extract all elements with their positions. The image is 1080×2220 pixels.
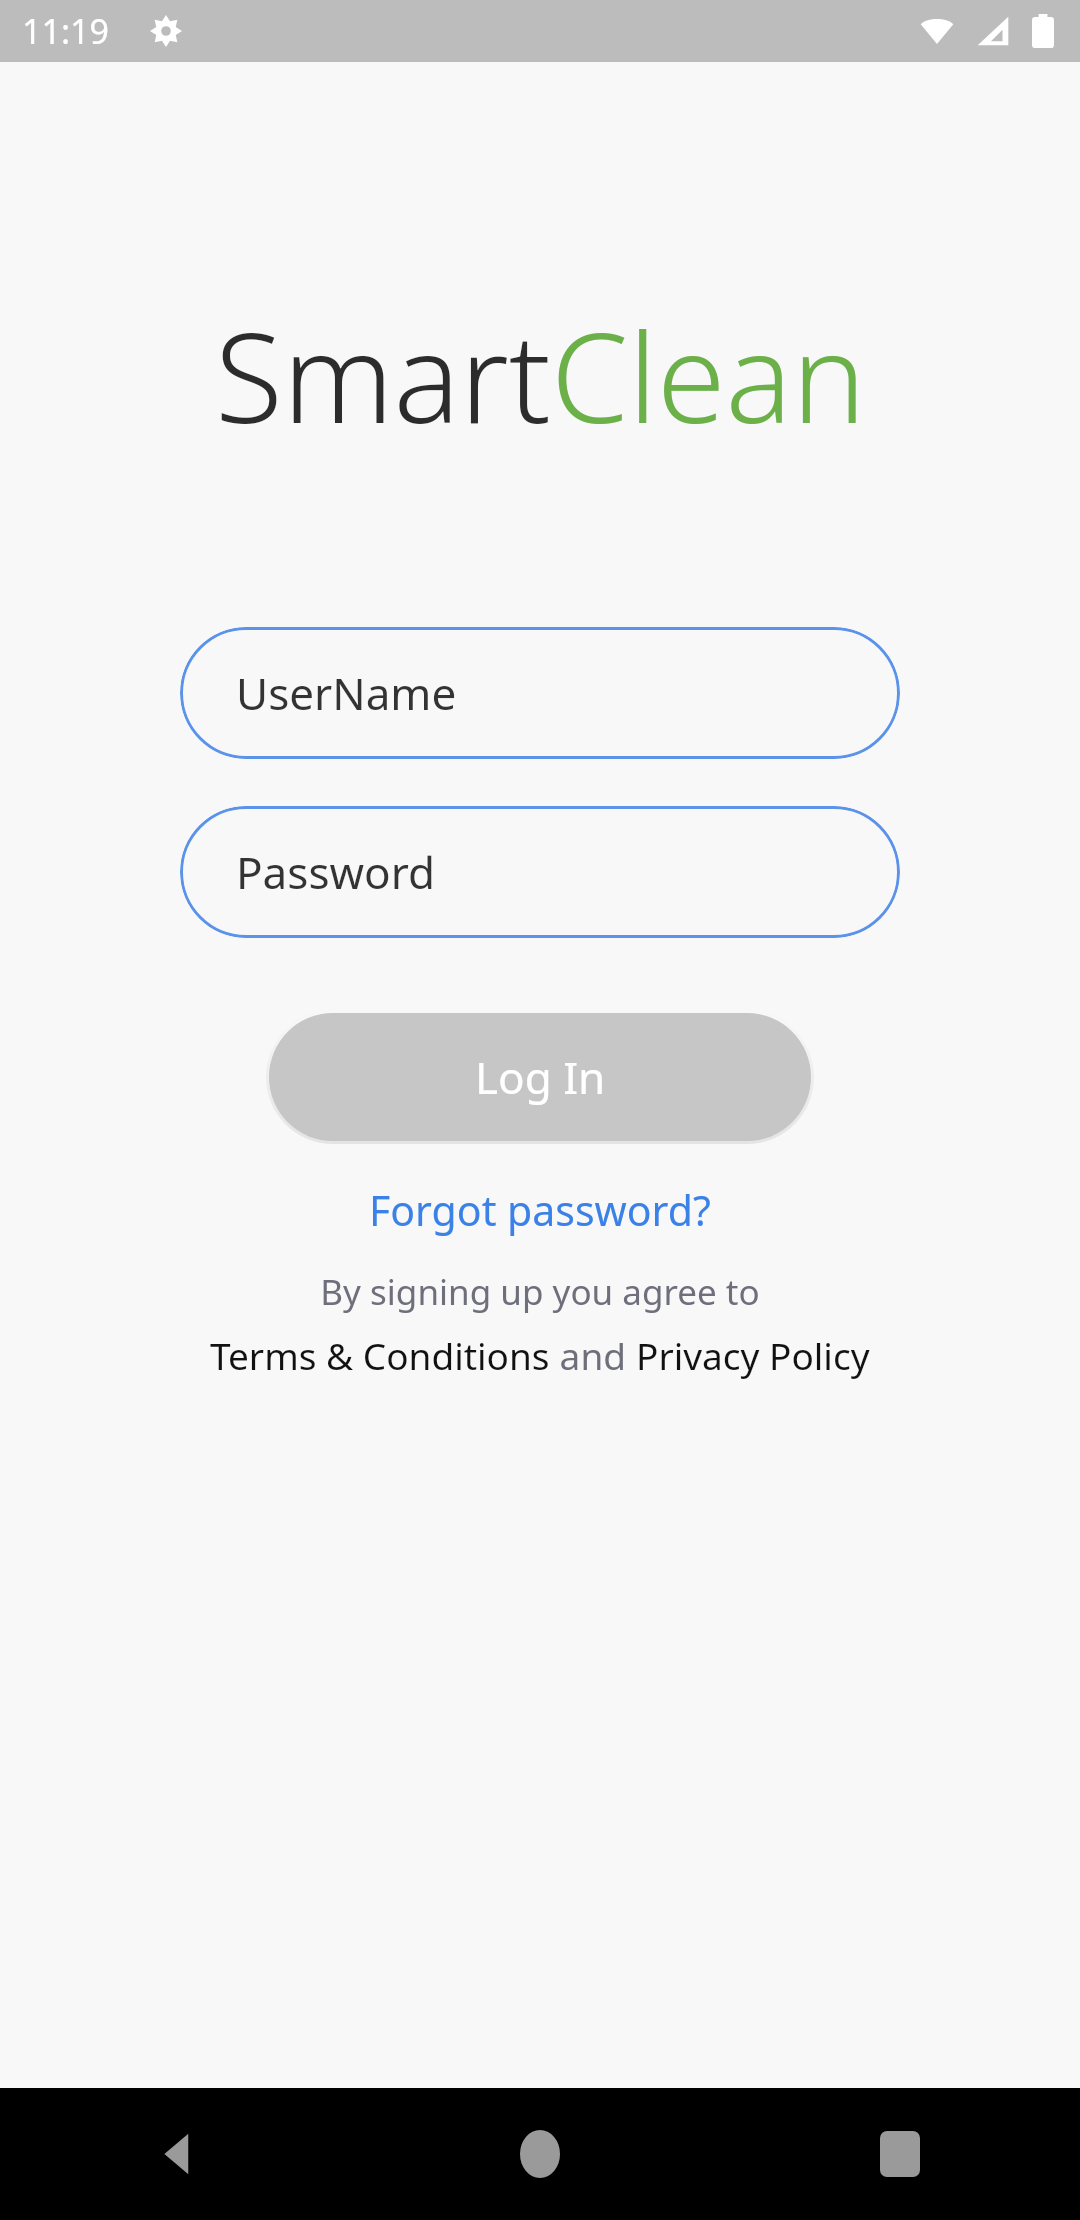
staticText: Clean xyxy=(551,290,866,459)
staticText: 11:19 xyxy=(22,8,109,54)
staticText: Smart xyxy=(215,290,551,459)
staticText: Privacy Policy xyxy=(636,1330,870,1380)
staticText: By signing up you agree to xyxy=(320,1268,760,1316)
button[interactable]: Home xyxy=(360,2088,720,2220)
button[interactable]: Password xyxy=(180,806,900,938)
staticText: Forgot password? xyxy=(369,1182,711,1238)
staticText: Password xyxy=(236,842,436,902)
button[interactable]: Privacy Policy xyxy=(636,1330,870,1380)
other: Settings xyxy=(150,15,182,47)
button[interactable]: Recent apps xyxy=(720,2088,1080,2220)
button[interactable]: Forgot password? xyxy=(359,1178,721,1242)
staticText: Terms & Conditions xyxy=(210,1330,550,1380)
button[interactable]: Back xyxy=(0,2088,360,2220)
button[interactable]: Terms & Conditions xyxy=(210,1330,550,1380)
staticText: Log In xyxy=(475,1047,606,1107)
staticText: and xyxy=(550,1330,636,1380)
button[interactable]: UserName xyxy=(180,627,900,759)
button[interactable]: Log In xyxy=(269,1013,811,1141)
staticText: UserName xyxy=(236,663,457,723)
